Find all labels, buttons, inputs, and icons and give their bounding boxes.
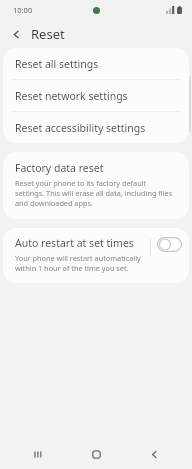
staticText: Reset accessibility settings — [15, 121, 146, 135]
button[interactable]: Home — [76, 440, 116, 469]
button[interactable]: Reset network settings — [3, 80, 189, 111]
staticText: Your phone will restart automatically wi… — [15, 253, 145, 273]
staticText: Reset all settings — [15, 57, 99, 71]
staticText: Auto restart at set times — [15, 236, 134, 250]
button[interactable]: Recent apps — [18, 440, 58, 469]
button[interactable]: Reset accessibility settings — [3, 112, 189, 143]
staticText: 10:00 — [13, 5, 33, 15]
staticText: Factory data reset — [15, 161, 104, 175]
button[interactable]: Auto restart at set times toggle — [157, 237, 182, 252]
staticText: Reset — [31, 25, 65, 43]
staticText: Reset network settings — [15, 89, 128, 103]
button[interactable]: Back — [134, 440, 174, 469]
button[interactable]: Reset all settings — [3, 48, 189, 79]
staticText: Reset your phone to its factory default … — [15, 178, 177, 208]
button[interactable]: Back — [6, 24, 26, 44]
button[interactable]: Factory data reset — [3, 152, 189, 219]
button[interactable]: Auto restart at set times — [3, 228, 189, 283]
